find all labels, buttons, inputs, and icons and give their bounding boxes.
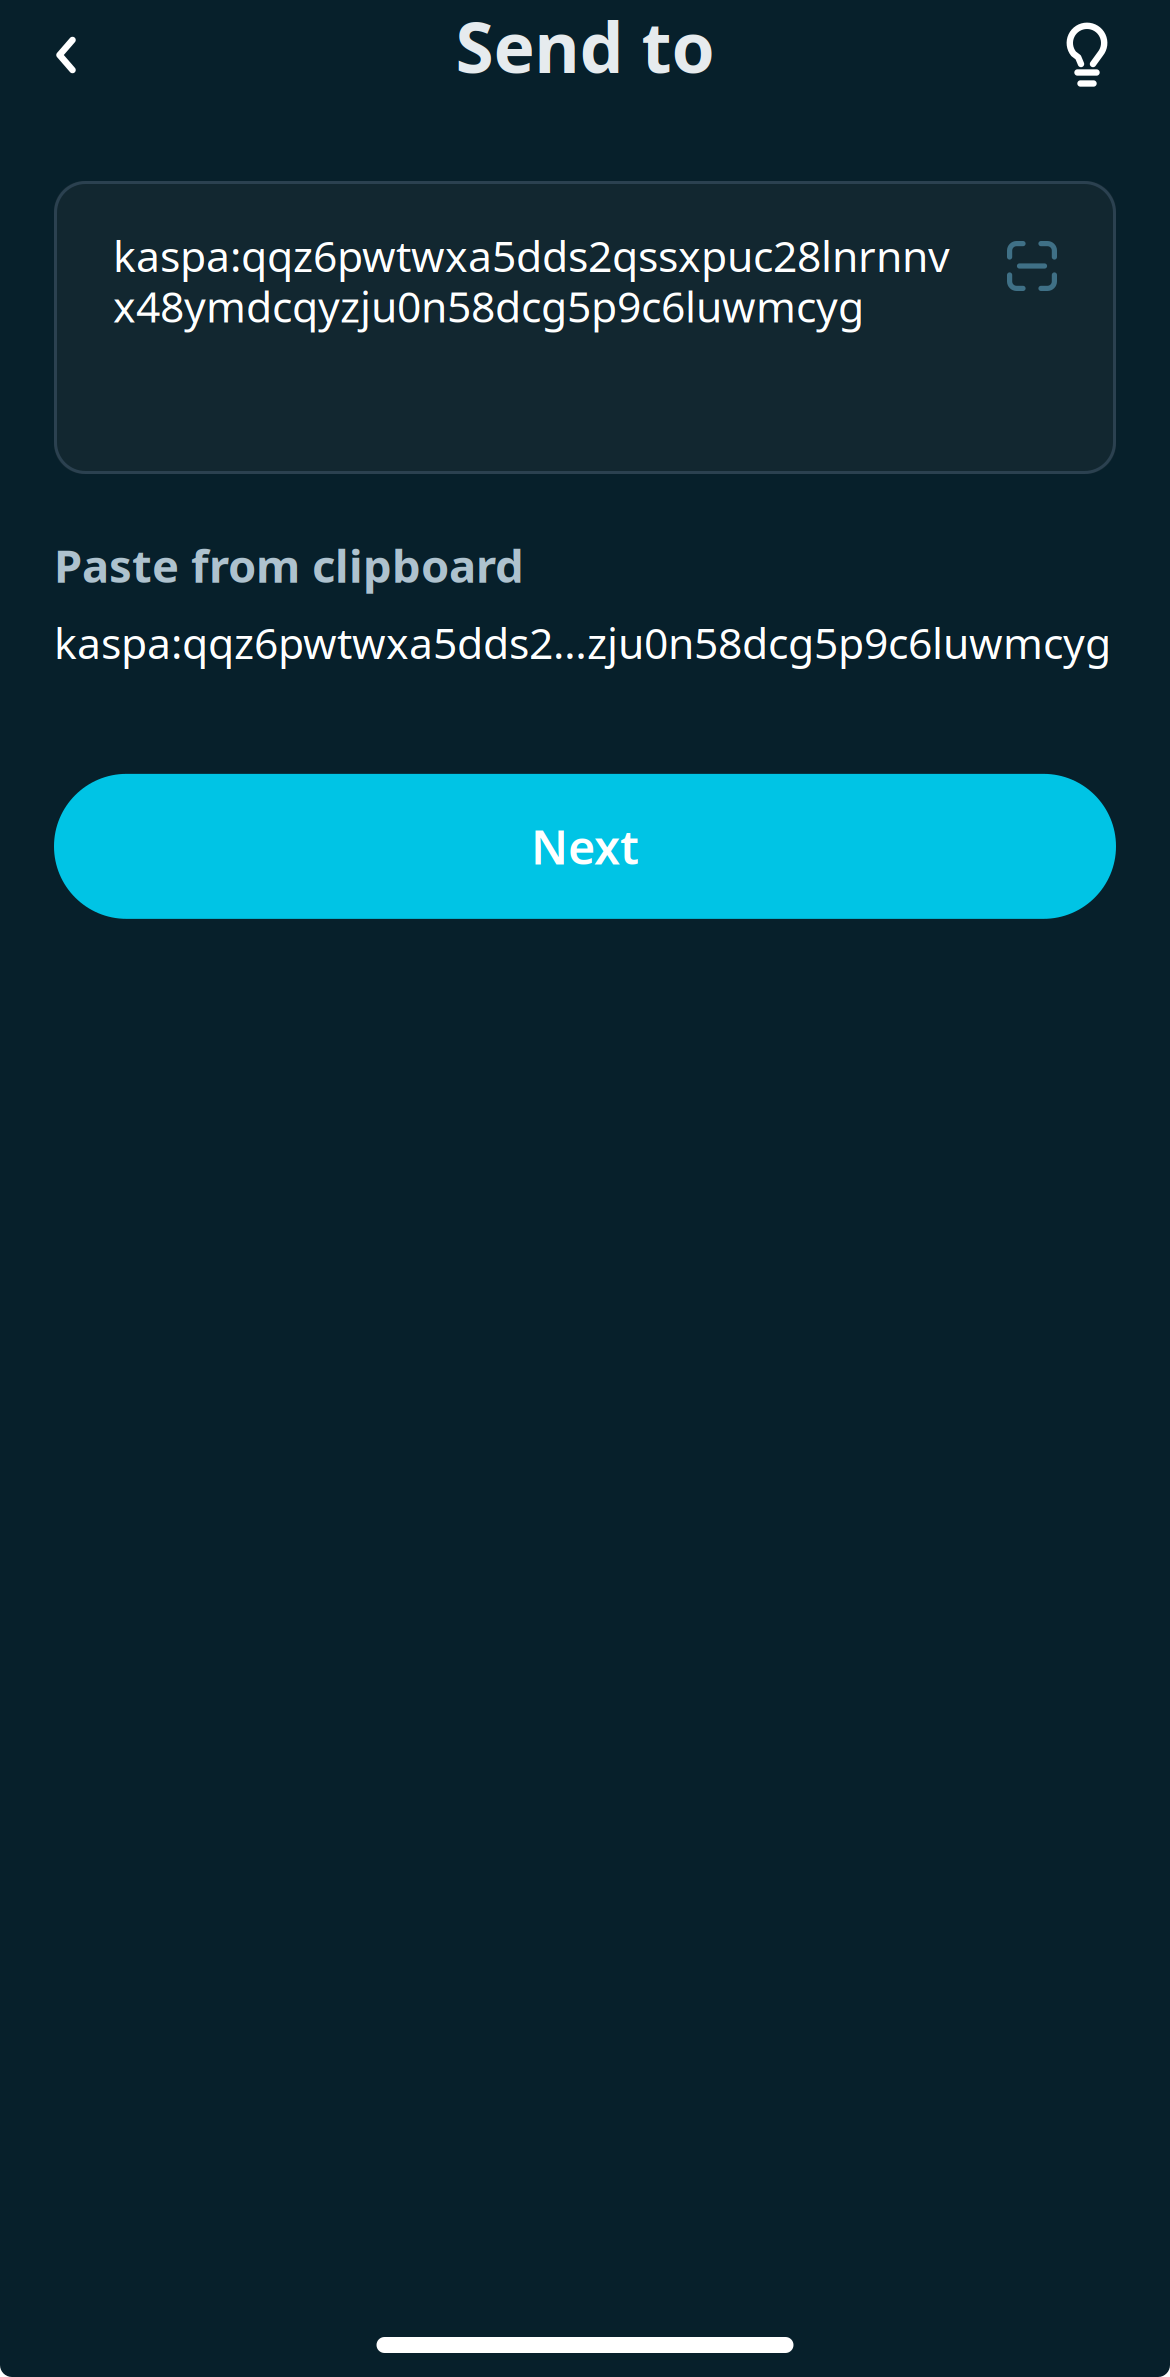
button[interactable]: Next	[54, 774, 1116, 919]
button[interactable]: Back	[18, 0, 114, 93]
button[interactable]: Tips	[1039, 0, 1135, 93]
staticText: kaspa:qqz6pwtwxa5dds2…zju0n58dcg5p9c6luw…	[54, 614, 1111, 671]
staticText: Next	[531, 815, 639, 877]
staticText: Send to	[455, 0, 714, 92]
staticText: x48ymdcqyzju0n58dcg5p9c6luwmcyg	[113, 278, 864, 334]
staticText: kaspa:qqz6pwtwxa5dds2qssxpuc28lnrnnv	[113, 227, 950, 284]
staticText: Paste from clipboard	[54, 535, 524, 595]
button[interactable]: Paste from clipboard	[54, 535, 1116, 671]
button[interactable]: Scan QR code	[996, 221, 1068, 293]
